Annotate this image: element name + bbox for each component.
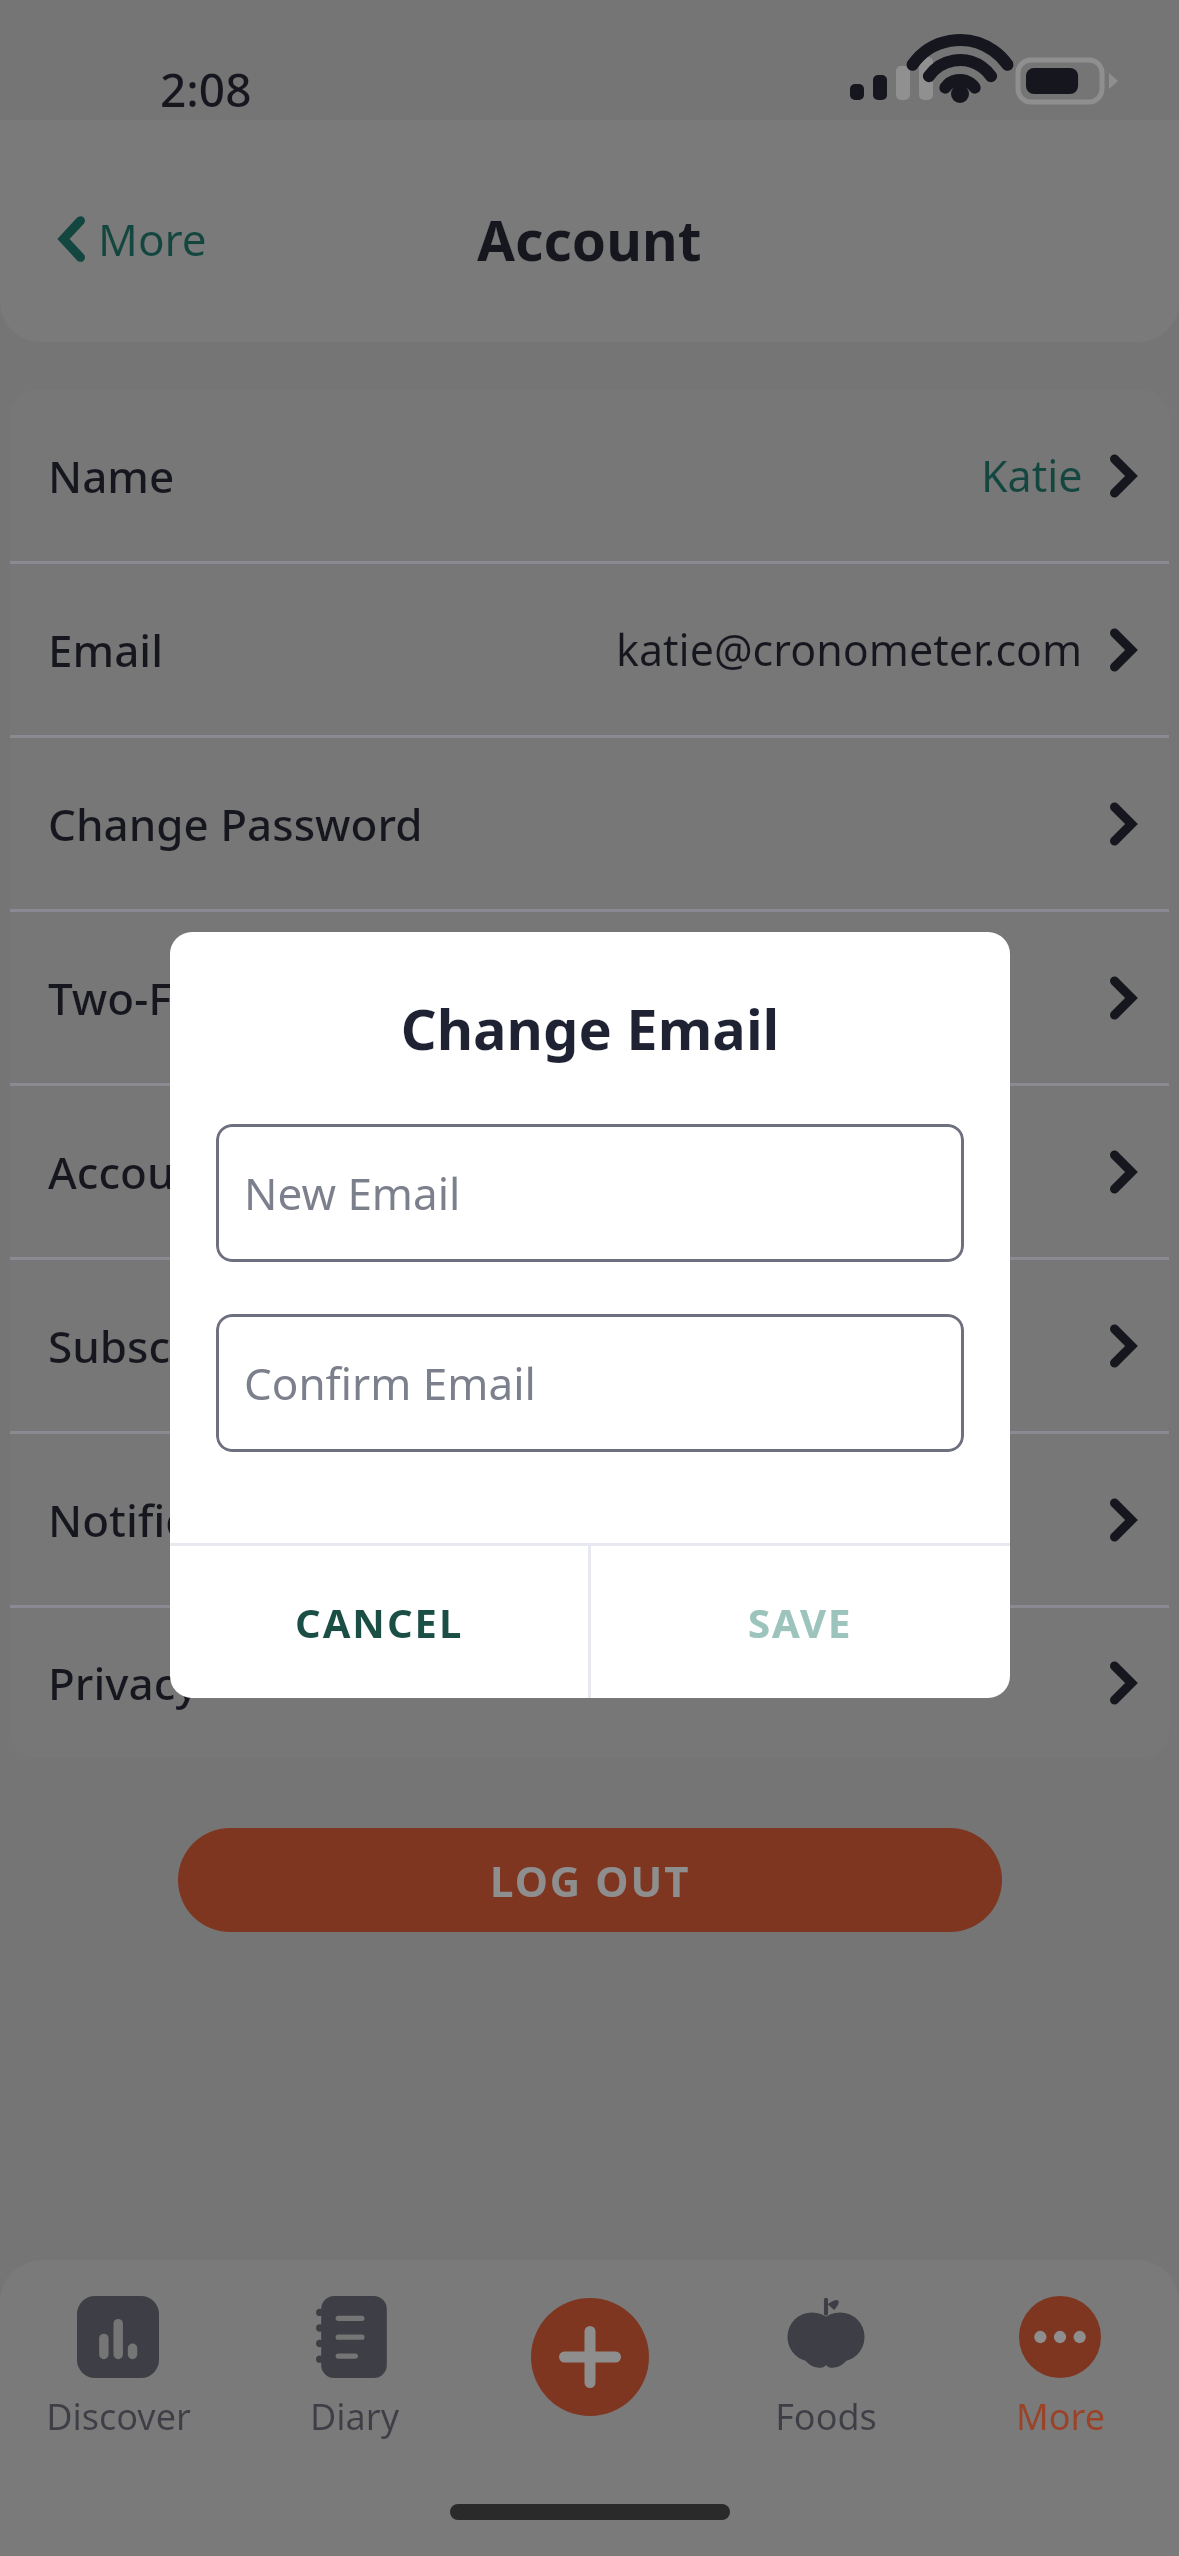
staticText: 2:08 — [160, 58, 252, 121]
button[interactable]: New Email — [216, 1124, 964, 1262]
staticText: CANCEL — [295, 1595, 464, 1649]
staticText: Change Password — [48, 794, 423, 854]
button[interactable]: Account Type — [10, 1086, 1169, 1257]
staticText: Katie — [981, 446, 1083, 505]
staticText: Confirm Email — [244, 1353, 536, 1413]
button[interactable]: Foods — [711, 2290, 941, 2447]
button[interactable]: Privacy — [10, 1608, 1169, 1758]
button[interactable]: Change Password — [10, 738, 1169, 909]
staticText: More — [98, 209, 207, 269]
staticText: Account Type — [48, 1142, 330, 1202]
staticText: Foods — [775, 2392, 877, 2441]
button[interactable]: LOG OUT — [178, 1828, 1002, 1932]
button[interactable]: Confirm Email — [216, 1314, 964, 1452]
staticText: More — [1016, 2392, 1105, 2441]
staticText: Privacy — [48, 1653, 199, 1713]
button[interactable]: Name — [10, 390, 1169, 561]
button[interactable]: Add — [531, 2298, 649, 2416]
button[interactable]: SAVE — [591, 1546, 1010, 1698]
button[interactable]: More — [945, 2290, 1175, 2447]
staticText: New Email — [244, 1163, 461, 1223]
button[interactable]: Discover — [3, 2290, 233, 2447]
staticText: Change Email — [170, 990, 1010, 1066]
staticText: Account — [477, 202, 702, 277]
button[interactable]: Diary — [239, 2290, 469, 2447]
button[interactable]: Subscription — [10, 1260, 1169, 1431]
button[interactable]: Email — [10, 564, 1169, 735]
button[interactable]: Two-Factor Authentication — [10, 912, 1169, 1083]
staticText: katie@cronometer.com — [616, 620, 1083, 679]
button[interactable]: Notifications — [10, 1434, 1169, 1605]
staticText: Two-Factor Authentication — [48, 968, 605, 1028]
staticText: LOG OUT — [490, 1852, 691, 1909]
staticText: Diary — [310, 2392, 399, 2441]
staticText: Subscription — [48, 1316, 312, 1376]
staticText: Notifications — [48, 1490, 317, 1550]
button[interactable]: CANCEL — [170, 1546, 588, 1698]
staticText: Name — [48, 446, 175, 506]
staticText: Email — [48, 620, 164, 680]
button[interactable]: More — [40, 195, 223, 283]
staticText: Discover — [46, 2392, 191, 2441]
staticText: SAVE — [748, 1595, 853, 1649]
